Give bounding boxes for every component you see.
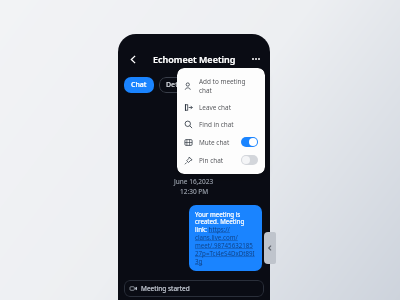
button[interactable]: Mute chat — [177, 133, 265, 151]
staticText: Details — [166, 80, 190, 90]
button[interactable]: Add to meeting chat — [177, 73, 265, 99]
staticText: Your meeting is created. Meeting link: h… — [195, 210, 256, 266]
staticText: June 16,2023 — [174, 177, 214, 186]
button[interactable]: Back — [124, 50, 142, 68]
button[interactable]: Pin chat off — [241, 155, 258, 165]
button[interactable]: More options — [247, 50, 265, 68]
button[interactable]: Expand panel — [264, 232, 276, 264]
button[interactable]: Pin chat — [177, 151, 265, 169]
button[interactable]: Meeting started — [124, 280, 264, 297]
button[interactable]: Chat — [124, 77, 154, 93]
staticText: 12:30 PM — [180, 187, 209, 196]
staticText: Pin chat — [199, 156, 238, 165]
button[interactable]: Your meeting is created. Meeting link: h… — [189, 205, 262, 271]
button[interactable]: Details — [159, 77, 197, 93]
staticText: Chat — [131, 80, 147, 90]
staticText: Find in chat — [199, 120, 258, 129]
staticText: Meeting started — [141, 284, 190, 293]
button[interactable]: Mute chat on — [241, 137, 258, 147]
staticText: Leave chat — [199, 103, 258, 112]
staticText: Add to meeting chat — [199, 77, 258, 95]
button[interactable]: Find in chat — [177, 116, 265, 133]
staticText: Mute chat — [199, 138, 238, 147]
button[interactable]: Leave chat — [177, 99, 265, 116]
staticText: Echomeet Meeting — [153, 53, 236, 65]
